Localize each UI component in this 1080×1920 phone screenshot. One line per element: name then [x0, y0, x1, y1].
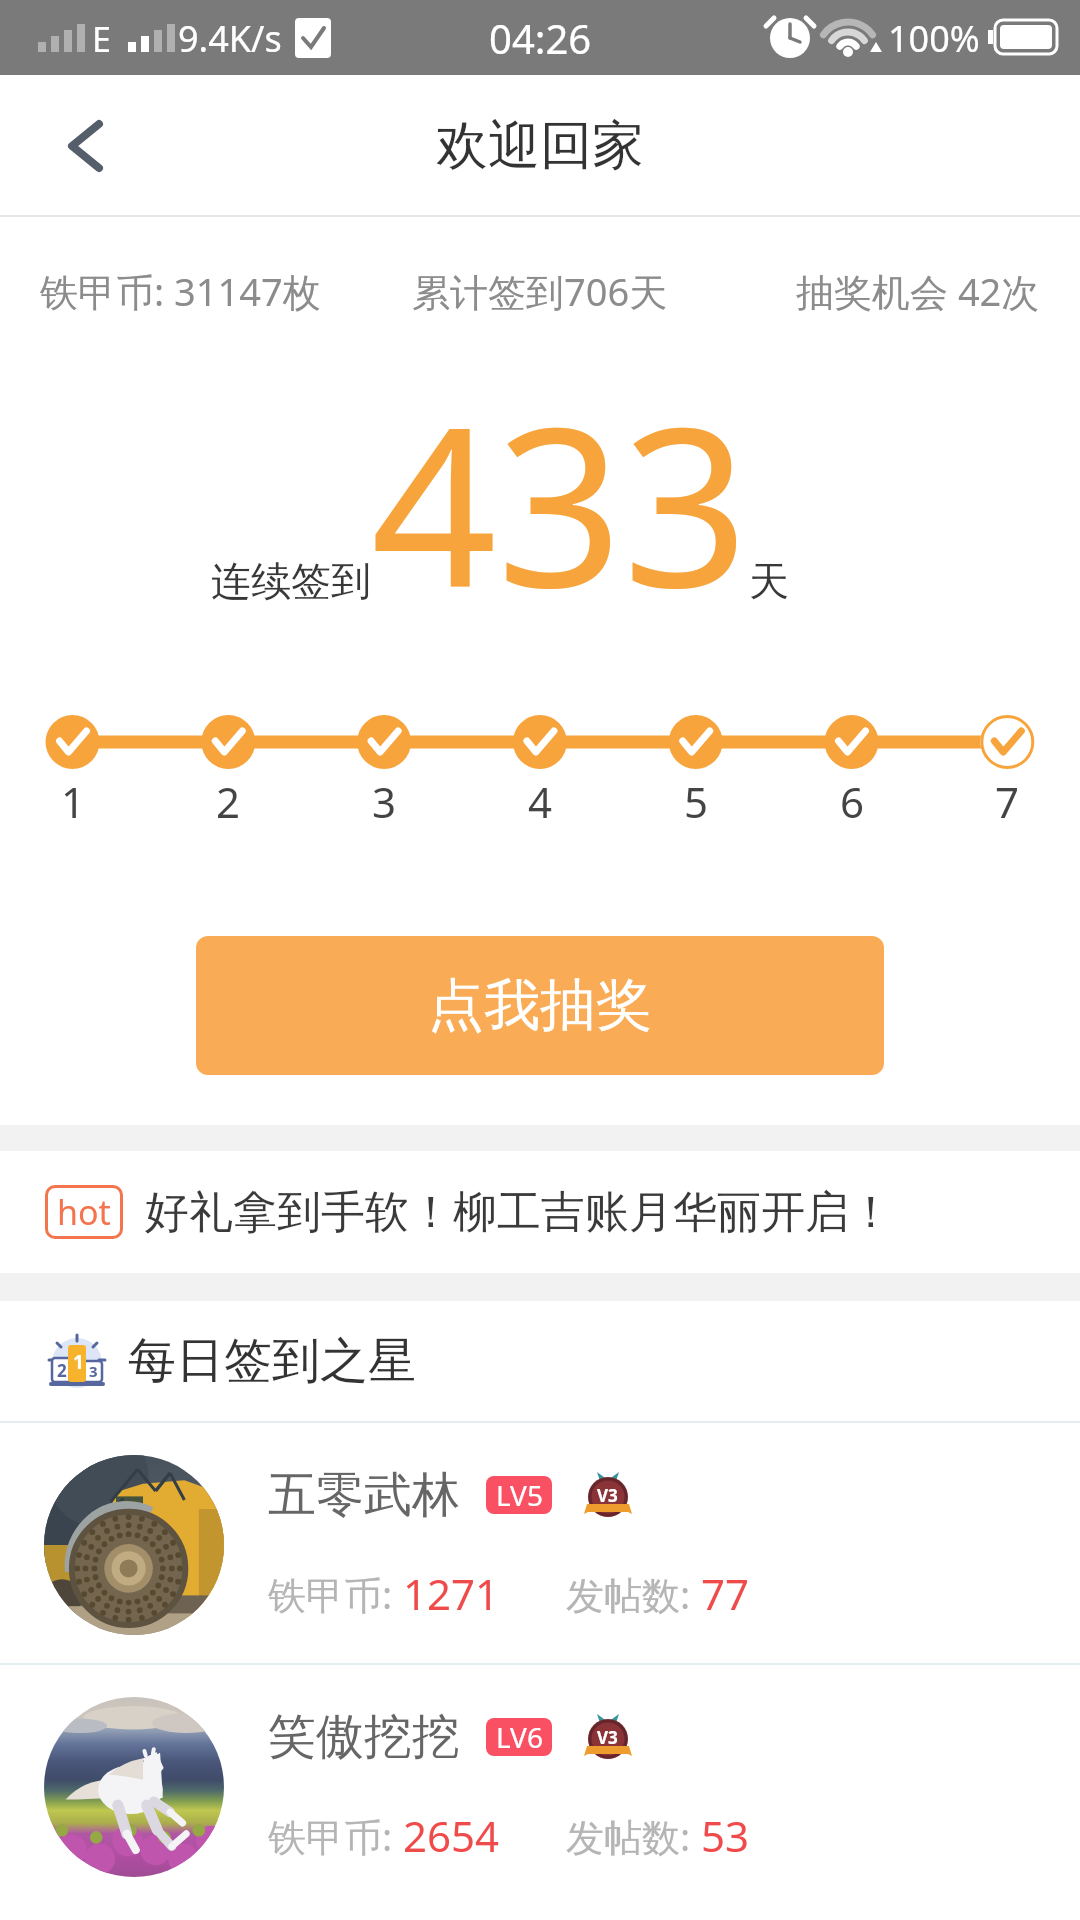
- button[interactable]: 五零武林: [0, 1423, 1080, 1663]
- staticText: LV6: [496, 1718, 543, 1756]
- staticText: V3: [597, 1484, 618, 1507]
- button[interactable]: [0, 75, 140, 217]
- staticText: 每日签到之星: [128, 1331, 416, 1391]
- staticText: 77: [701, 1565, 750, 1622]
- staticText: 4: [528, 773, 553, 829]
- staticText: 天: [749, 556, 789, 606]
- staticText: 铁甲币:: [268, 1568, 403, 1620]
- staticText: 04:26: [489, 11, 592, 65]
- staticText: 抽奖机会 42次: [796, 265, 1040, 317]
- staticText: 53: [701, 1807, 750, 1864]
- staticText: 3: [372, 773, 397, 829]
- staticText: 铁甲币:: [268, 1810, 403, 1862]
- staticText: 9.4K/s: [178, 14, 282, 63]
- staticText: 5: [684, 773, 709, 829]
- button[interactable]: 笑傲挖挖: [0, 1665, 1080, 1905]
- staticText: LV5: [496, 1476, 543, 1514]
- staticText: 1271: [403, 1565, 500, 1622]
- staticText: 2: [216, 773, 241, 829]
- staticText: 100%: [888, 14, 980, 63]
- staticText: 3: [89, 1361, 98, 1381]
- staticText: 连续签到: [211, 556, 371, 606]
- staticText: 发帖数:: [566, 1810, 701, 1862]
- staticText: 433: [371, 352, 749, 652]
- staticText: 欢迎回家: [436, 113, 644, 179]
- button[interactable]: 点我抽奖: [196, 936, 884, 1075]
- staticText: 累计签到706天: [412, 265, 668, 317]
- staticText: 1: [61, 773, 86, 829]
- staticText: 1: [73, 1349, 84, 1375]
- staticText: V3: [597, 1726, 618, 1749]
- staticText: 发帖数:: [566, 1568, 701, 1620]
- staticText: 点我抽奖: [428, 970, 652, 1041]
- staticText: hot: [57, 1189, 111, 1235]
- staticText: 铁甲币: 31147枚: [40, 265, 321, 317]
- staticText: 2: [57, 1359, 67, 1382]
- staticText: E: [92, 16, 111, 62]
- staticText: 五零武林: [268, 1465, 460, 1525]
- staticText: 7: [995, 773, 1020, 829]
- staticText: 笑傲挖挖: [268, 1707, 460, 1767]
- staticText: 6: [840, 773, 865, 829]
- button[interactable]: hot: [0, 1151, 1080, 1273]
- staticText: 2654: [403, 1807, 500, 1864]
- staticText: 好礼拿到手软！柳工吉账月华丽开启！: [145, 1185, 893, 1240]
